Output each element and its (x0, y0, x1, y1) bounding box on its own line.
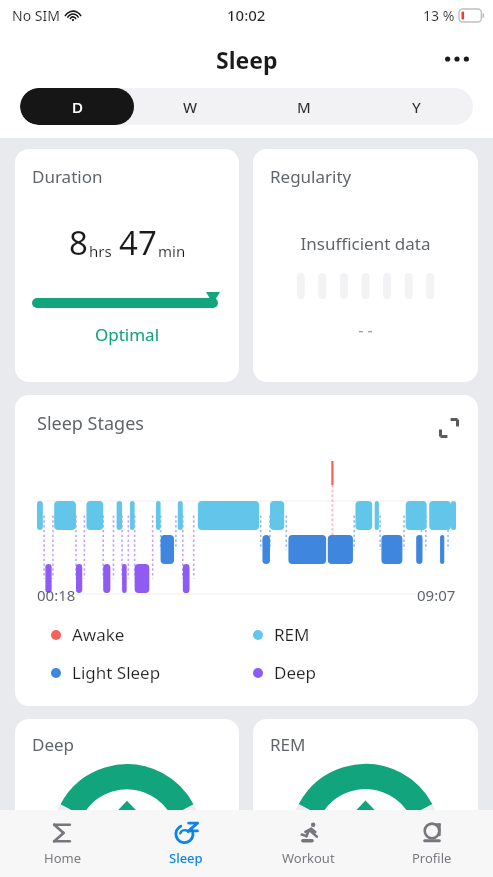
staticText: Deep (274, 661, 317, 684)
staticText: REM (274, 623, 310, 646)
button[interactable]: Regularity (253, 149, 478, 382)
button[interactable]: Profile (370, 810, 493, 877)
staticText: Optimal (32, 323, 222, 346)
button[interactable]: M (247, 88, 360, 125)
button[interactable]: Workout (247, 810, 370, 877)
button[interactable]: More options (435, 37, 479, 81)
staticText: Insufficient data (270, 232, 461, 255)
button[interactable]: Sleep (124, 810, 247, 877)
staticText: min (158, 241, 186, 261)
staticText: Sleep (169, 849, 203, 867)
staticText: Home (44, 849, 81, 867)
button[interactable]: Home (0, 810, 124, 877)
staticText: No SIM (12, 6, 60, 25)
staticText: Light Sleep (72, 661, 161, 684)
staticText: Regularity (270, 165, 352, 188)
staticText: hrs (89, 241, 112, 261)
staticText: Profile (412, 849, 452, 867)
button[interactable]: Deep (15, 719, 239, 839)
staticText: M (297, 97, 311, 117)
button[interactable]: REM (253, 719, 478, 839)
staticText: Duration (32, 165, 103, 188)
button[interactable]: Expand chart (432, 411, 466, 445)
staticText: REM (270, 733, 306, 756)
button[interactable]: Y (360, 88, 473, 125)
staticText: Sleep Stages (37, 411, 144, 436)
staticText: Y (412, 97, 421, 117)
staticText: W (183, 97, 198, 117)
staticText: Awake (72, 623, 125, 646)
staticText: 47 (119, 220, 157, 265)
staticText: Deep (32, 733, 75, 756)
staticText: 8 (69, 220, 88, 265)
staticText: 09:07 (417, 585, 456, 605)
staticText: 00:18 (37, 585, 76, 605)
button[interactable]: D (20, 88, 134, 125)
staticText: 10:02 (227, 5, 266, 25)
staticText: D (72, 97, 83, 117)
staticText: 13 % (423, 6, 455, 25)
button[interactable]: W (134, 88, 247, 125)
button[interactable]: Sleep Stages (15, 395, 478, 706)
staticText: - - (270, 319, 461, 341)
staticText: Sleep (216, 44, 278, 75)
button[interactable]: Duration (15, 149, 239, 382)
staticText: Workout (282, 849, 335, 867)
